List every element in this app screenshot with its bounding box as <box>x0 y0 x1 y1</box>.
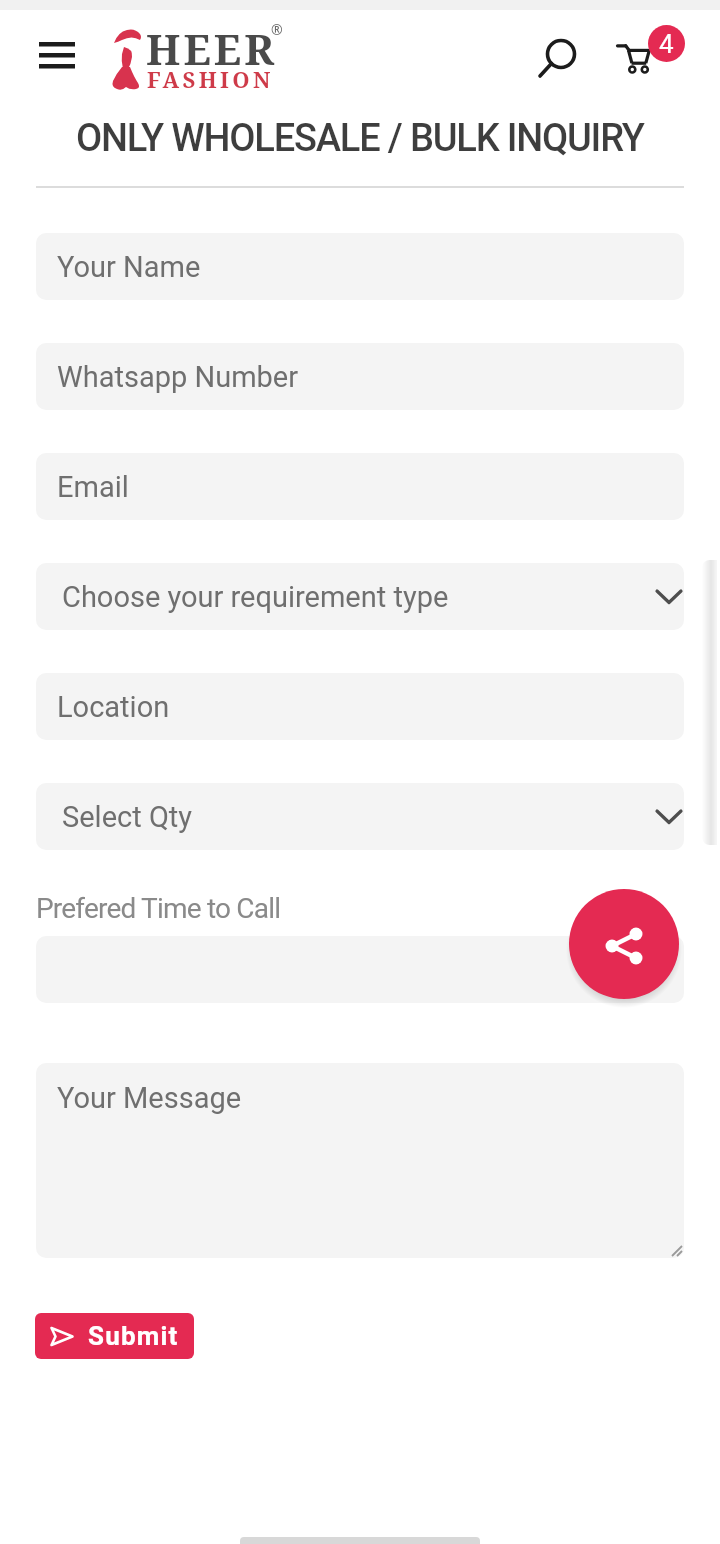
button[interactable] <box>36 936 684 1003</box>
button[interactable] <box>39 42 75 69</box>
staticText: Prefered Time to Call <box>36 892 281 925</box>
staticText: Your Message <box>57 1081 242 1115</box>
staticText: HEER <box>146 20 278 77</box>
button[interactable]: Choose your requirement type <box>36 563 684 630</box>
staticText: 4 <box>659 29 674 59</box>
button[interactable]: Whatsapp Number <box>36 343 684 410</box>
button[interactable]: Email <box>36 453 684 520</box>
button[interactable]: Select Qty <box>36 783 684 850</box>
staticText: Location <box>57 690 170 724</box>
staticText: FASHION <box>147 64 274 94</box>
staticText: Your Name <box>57 250 201 284</box>
button[interactable] <box>569 889 679 999</box>
staticText: ® <box>271 20 283 39</box>
button[interactable] <box>615 33 655 75</box>
staticText: Email <box>57 470 129 504</box>
button[interactable]: Submit <box>35 1313 194 1359</box>
staticText: Choose your requirement type <box>62 580 449 614</box>
button[interactable]: Location <box>36 673 684 740</box>
button[interactable] <box>536 28 580 80</box>
staticText: Select Qty <box>62 800 193 834</box>
button[interactable]: Your Message <box>36 1063 684 1258</box>
staticText: Whatsapp Number <box>57 360 299 394</box>
staticText: ONLY WHOLESALE / BULK INQUIRY <box>76 116 644 161</box>
button[interactable]: Your Name <box>36 233 684 300</box>
staticText: Submit <box>88 1321 179 1351</box>
